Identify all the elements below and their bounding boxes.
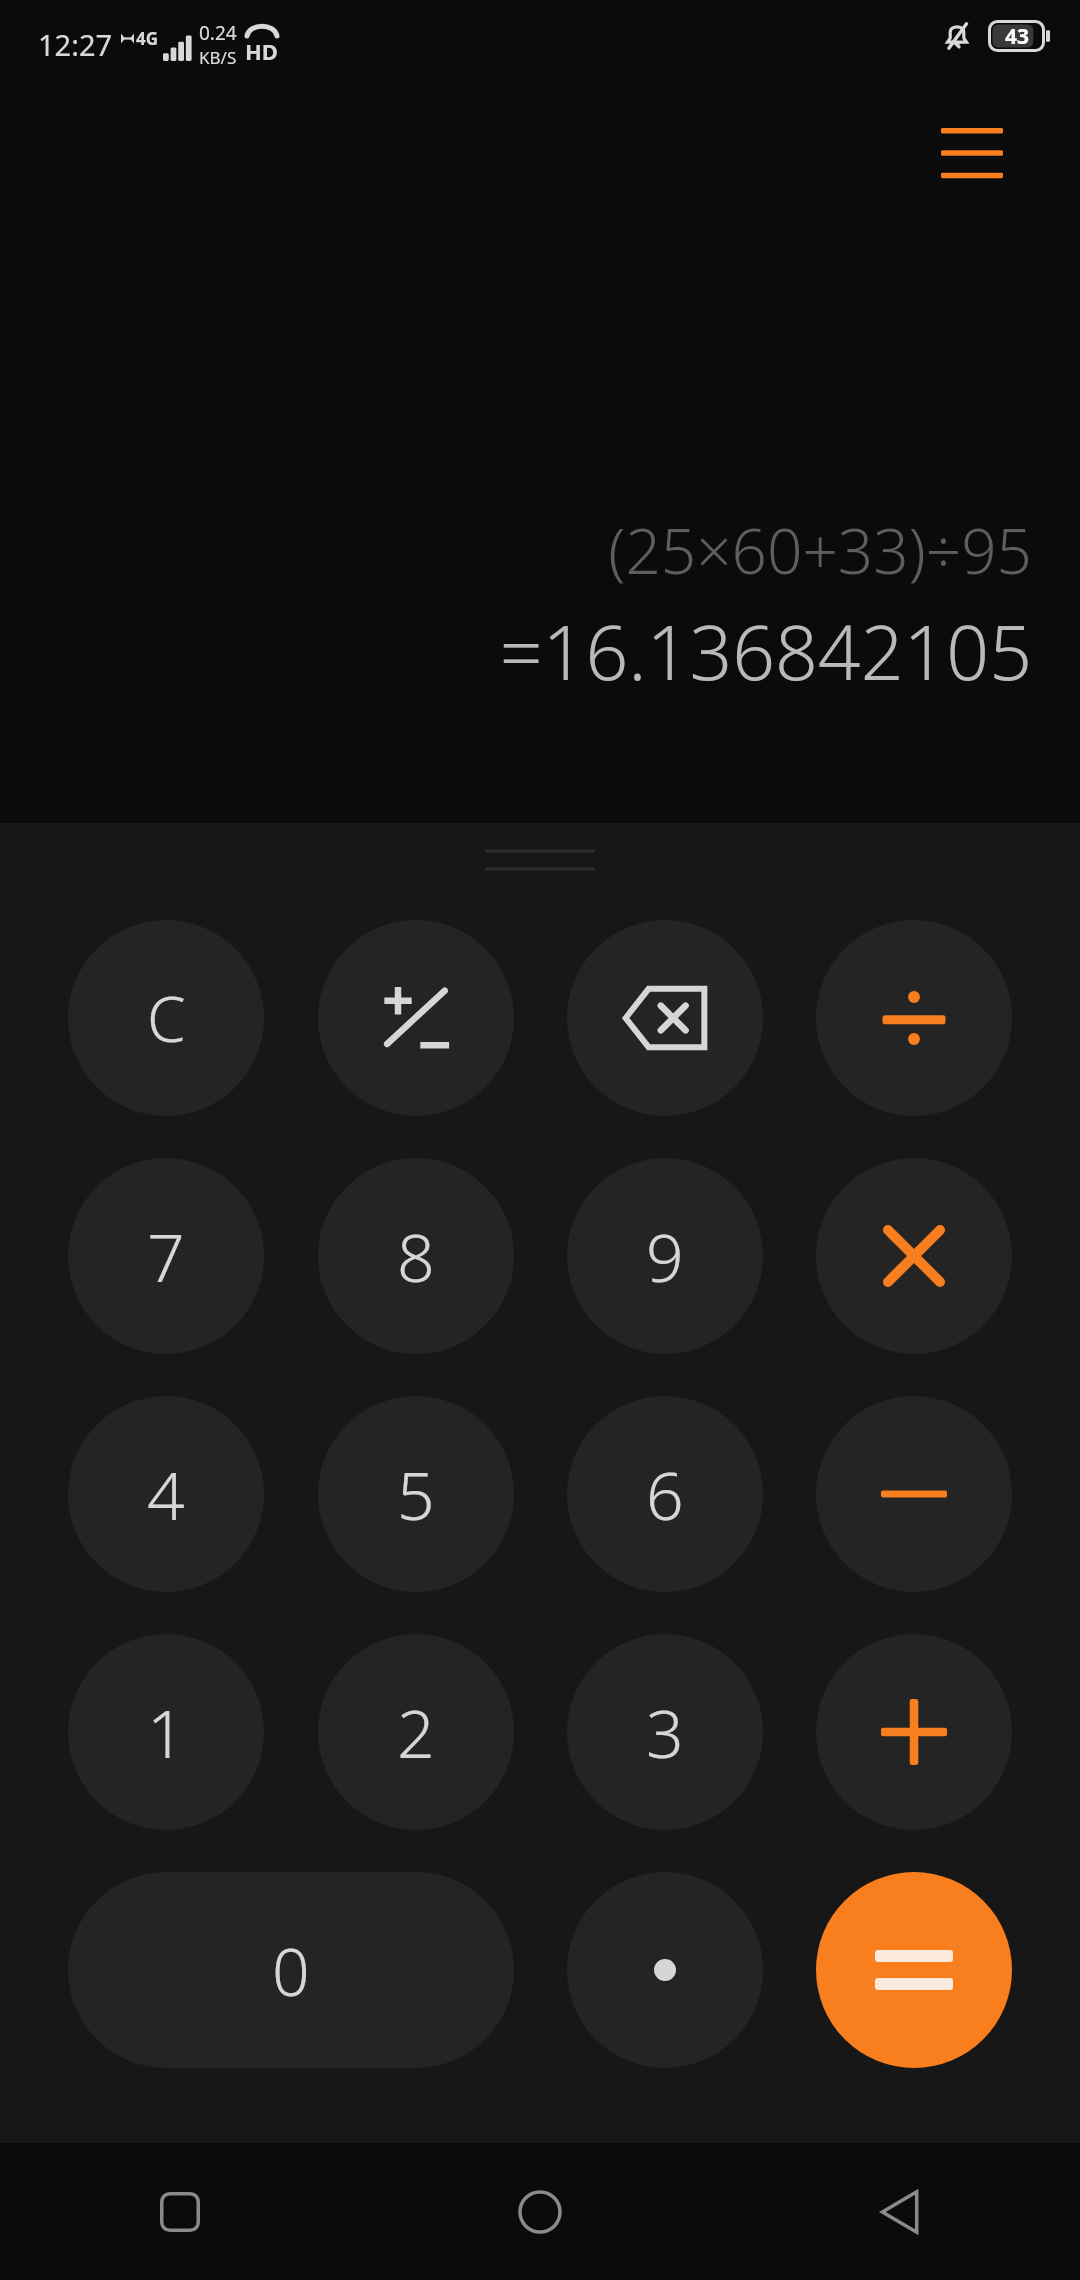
staticText: 1 (147, 1687, 185, 1777)
button[interactable]: 1 (68, 1634, 264, 1830)
staticText: 0 (272, 1925, 310, 2015)
button[interactable]: Divide (816, 920, 1012, 1116)
staticText: 4 (147, 1449, 185, 1539)
staticText: 5 (397, 1449, 435, 1539)
staticText: (25×60+33)÷95 (608, 508, 1032, 592)
staticText: 3 (646, 1687, 684, 1777)
button[interactable]: Back (720, 2143, 1080, 2280)
button[interactable]: Home (360, 2143, 720, 2280)
button[interactable]: Plus minus (318, 920, 514, 1116)
button[interactable]: Decimal point (567, 1872, 763, 2068)
button[interactable]: Equals (816, 1872, 1012, 2068)
staticText: 4G (136, 27, 159, 50)
button[interactable]: 7 (68, 1158, 264, 1354)
button[interactable]: 6 (567, 1396, 763, 1592)
button[interactable]: Menu (916, 106, 1028, 198)
button[interactable]: Backspace (567, 920, 763, 1116)
button[interactable]: 5 (318, 1396, 514, 1592)
button[interactable]: 0 (68, 1872, 514, 2068)
button[interactable]: Recents (0, 2143, 360, 2280)
staticText: 2 (397, 1687, 435, 1777)
staticText: KB/S (199, 46, 237, 69)
staticText: C (147, 976, 186, 1060)
button[interactable]: 8 (318, 1158, 514, 1354)
button[interactable]: C (68, 920, 264, 1116)
staticText: 8 (397, 1211, 435, 1301)
staticText: HD (245, 36, 278, 66)
button[interactable]: 9 (567, 1158, 763, 1354)
staticText: 9 (646, 1211, 684, 1301)
staticText: 7 (147, 1211, 185, 1301)
button[interactable]: 2 (318, 1634, 514, 1830)
button[interactable]: Multiply (816, 1158, 1012, 1354)
staticText: 12:27 (38, 25, 113, 64)
button[interactable]: 3 (567, 1634, 763, 1830)
staticText: 6 (646, 1449, 684, 1539)
staticText: =16.136842105 (499, 600, 1032, 702)
button[interactable]: 4 (68, 1396, 264, 1592)
staticText: 0.24 (199, 20, 237, 46)
staticText: 43 (1005, 22, 1030, 51)
button[interactable]: Minus (816, 1396, 1012, 1592)
button[interactable]: Plus (816, 1634, 1012, 1830)
